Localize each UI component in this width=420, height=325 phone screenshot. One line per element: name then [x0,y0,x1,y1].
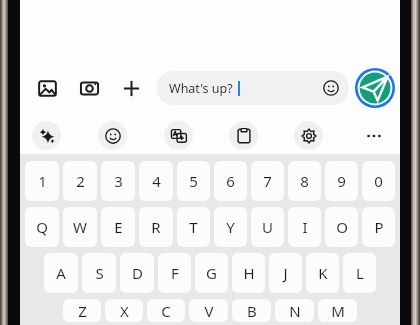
staticText: F [171,263,179,283]
button[interactable]: C [147,299,185,322]
staticText: B [247,301,257,321]
button[interactable]: T [177,207,210,247]
button[interactable]: Z [63,299,101,322]
staticText: V [204,301,214,321]
staticText: P [374,217,384,237]
staticText: K [318,263,328,283]
staticText: U [262,217,273,237]
button[interactable]: B [232,299,271,322]
staticText: 8 [300,171,309,191]
staticText: What's up? [169,80,233,97]
staticText: S [95,263,104,283]
button[interactable]: A [44,253,78,293]
button[interactable]: 1 [25,161,59,201]
button[interactable]: X [105,299,143,322]
staticText: T [189,217,198,237]
staticText: Q [36,217,48,237]
button[interactable]: More [359,121,388,150]
button[interactable]: M [318,299,357,322]
button[interactable]: Settings [294,121,323,150]
staticText: N [289,301,301,321]
button[interactable]: H [232,253,265,293]
button[interactable]: Gallery [30,71,64,105]
button[interactable]: 5 [177,161,210,201]
button[interactable]: AI suggestions [32,121,61,150]
button[interactable]: Y [214,207,247,247]
staticText: M [331,301,345,321]
button[interactable]: U [251,207,284,247]
button[interactable]: S [82,253,116,293]
button[interactable]: P [362,207,395,247]
staticText: 3 [114,171,123,191]
button[interactable]: Emoji [321,78,341,98]
button[interactable]: J [269,253,302,293]
button[interactable]: G [195,253,228,293]
button[interactable]: 7 [251,161,284,201]
button[interactable]: 4 [139,161,173,201]
staticText: 1 [38,171,47,191]
staticText: Y [226,217,235,237]
button[interactable]: Clipboard [229,121,258,150]
button[interactable]: 2 [63,161,97,201]
button[interactable]: V [189,299,228,322]
button[interactable]: F [158,253,191,293]
button[interactable]: What's up? [156,71,349,105]
button[interactable]: 6 [214,161,247,201]
staticText: O [336,217,348,237]
staticText: X [120,301,129,321]
button[interactable]: N [275,299,314,322]
staticText: L [356,263,364,283]
staticText: G [206,263,217,283]
staticText: E [114,217,123,237]
button[interactable]: D [120,253,154,293]
button[interactable]: W [63,207,97,247]
button[interactable]: Translate [164,121,193,150]
button[interactable]: I [288,207,321,247]
button[interactable]: Emoji [98,121,127,150]
button[interactable]: 0 [362,161,395,201]
staticText: 5 [189,171,198,191]
staticText: D [132,263,143,283]
staticText: 7 [263,171,272,191]
button[interactable]: L [343,253,376,293]
button[interactable]: 3 [101,161,135,201]
button[interactable]: E [101,207,135,247]
staticText: C [161,301,171,321]
staticText: A [56,263,66,283]
button[interactable]: 8 [288,161,321,201]
button[interactable]: 9 [325,161,358,201]
staticText: 0 [374,171,383,191]
button[interactable]: Send [354,67,396,109]
staticText: 9 [337,171,346,191]
staticText: 4 [152,171,161,191]
button[interactable]: R [139,207,173,247]
staticText: 6 [226,171,235,191]
button[interactable]: Q [25,207,59,247]
staticText: I [302,217,308,237]
staticText: Z [78,301,87,321]
button[interactable]: More options [114,71,148,105]
staticText: 2 [76,171,85,191]
staticText: W [73,217,87,237]
button[interactable]: O [325,207,358,247]
button[interactable]: K [306,253,339,293]
staticText: R [151,217,161,237]
staticText: J [283,263,288,283]
staticText: H [243,263,255,283]
button[interactable]: Camera [72,71,106,105]
